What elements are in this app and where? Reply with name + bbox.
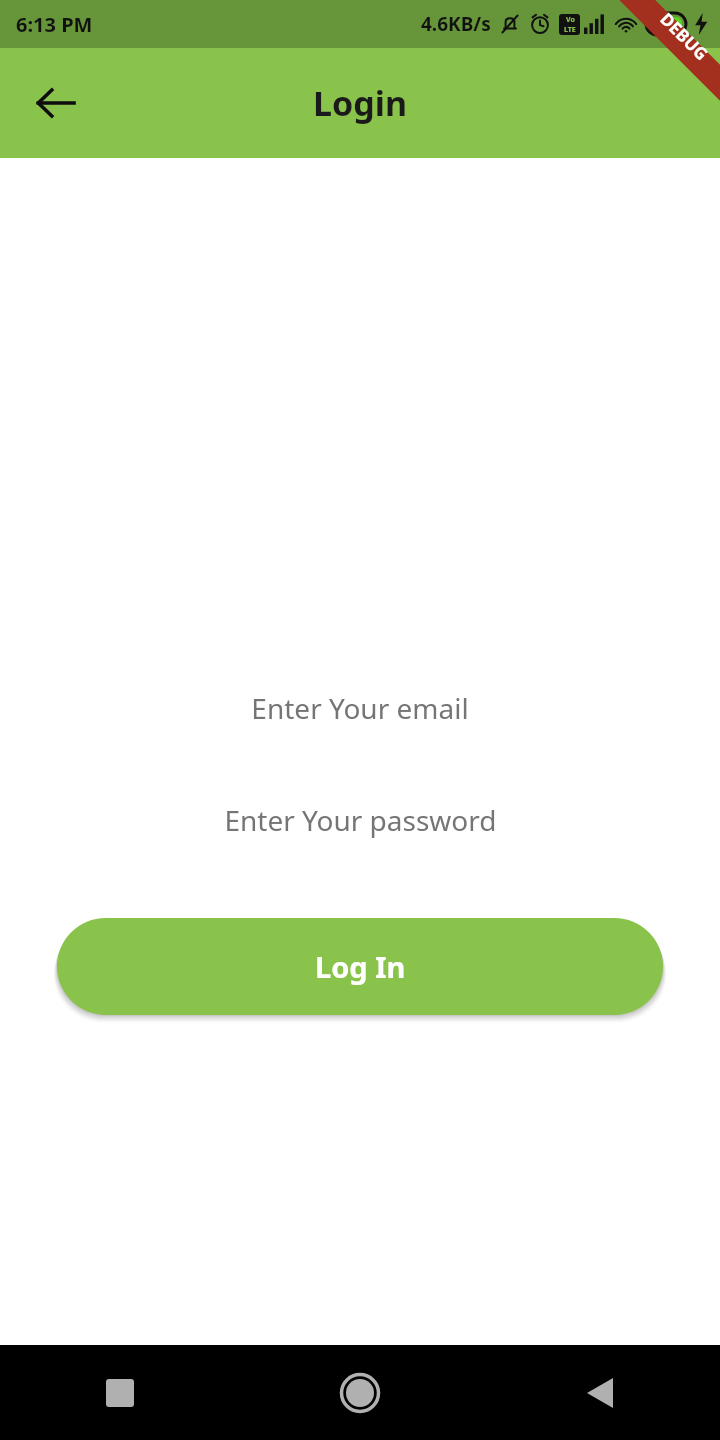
staticText: Enter Your password xyxy=(224,801,497,839)
button[interactable]: Log In xyxy=(57,918,663,1015)
button[interactable]: Enter Your password xyxy=(0,792,720,848)
button[interactable]: Back xyxy=(480,1345,720,1440)
staticText: Log In xyxy=(315,947,406,986)
staticText: Login xyxy=(313,80,408,126)
staticText: 4.6KB/s xyxy=(421,11,491,37)
button[interactable]: Back xyxy=(22,69,90,137)
staticText: DEBUG xyxy=(655,7,713,65)
button[interactable]: Enter Your email xyxy=(0,680,720,736)
staticText: Enter Your email xyxy=(251,689,469,727)
staticText: Vo xyxy=(566,15,575,25)
button[interactable]: Home xyxy=(240,1345,480,1440)
button[interactable]: Recents xyxy=(0,1345,240,1440)
staticText: 6:13 PM xyxy=(16,11,93,38)
staticText: LTE xyxy=(564,25,576,35)
